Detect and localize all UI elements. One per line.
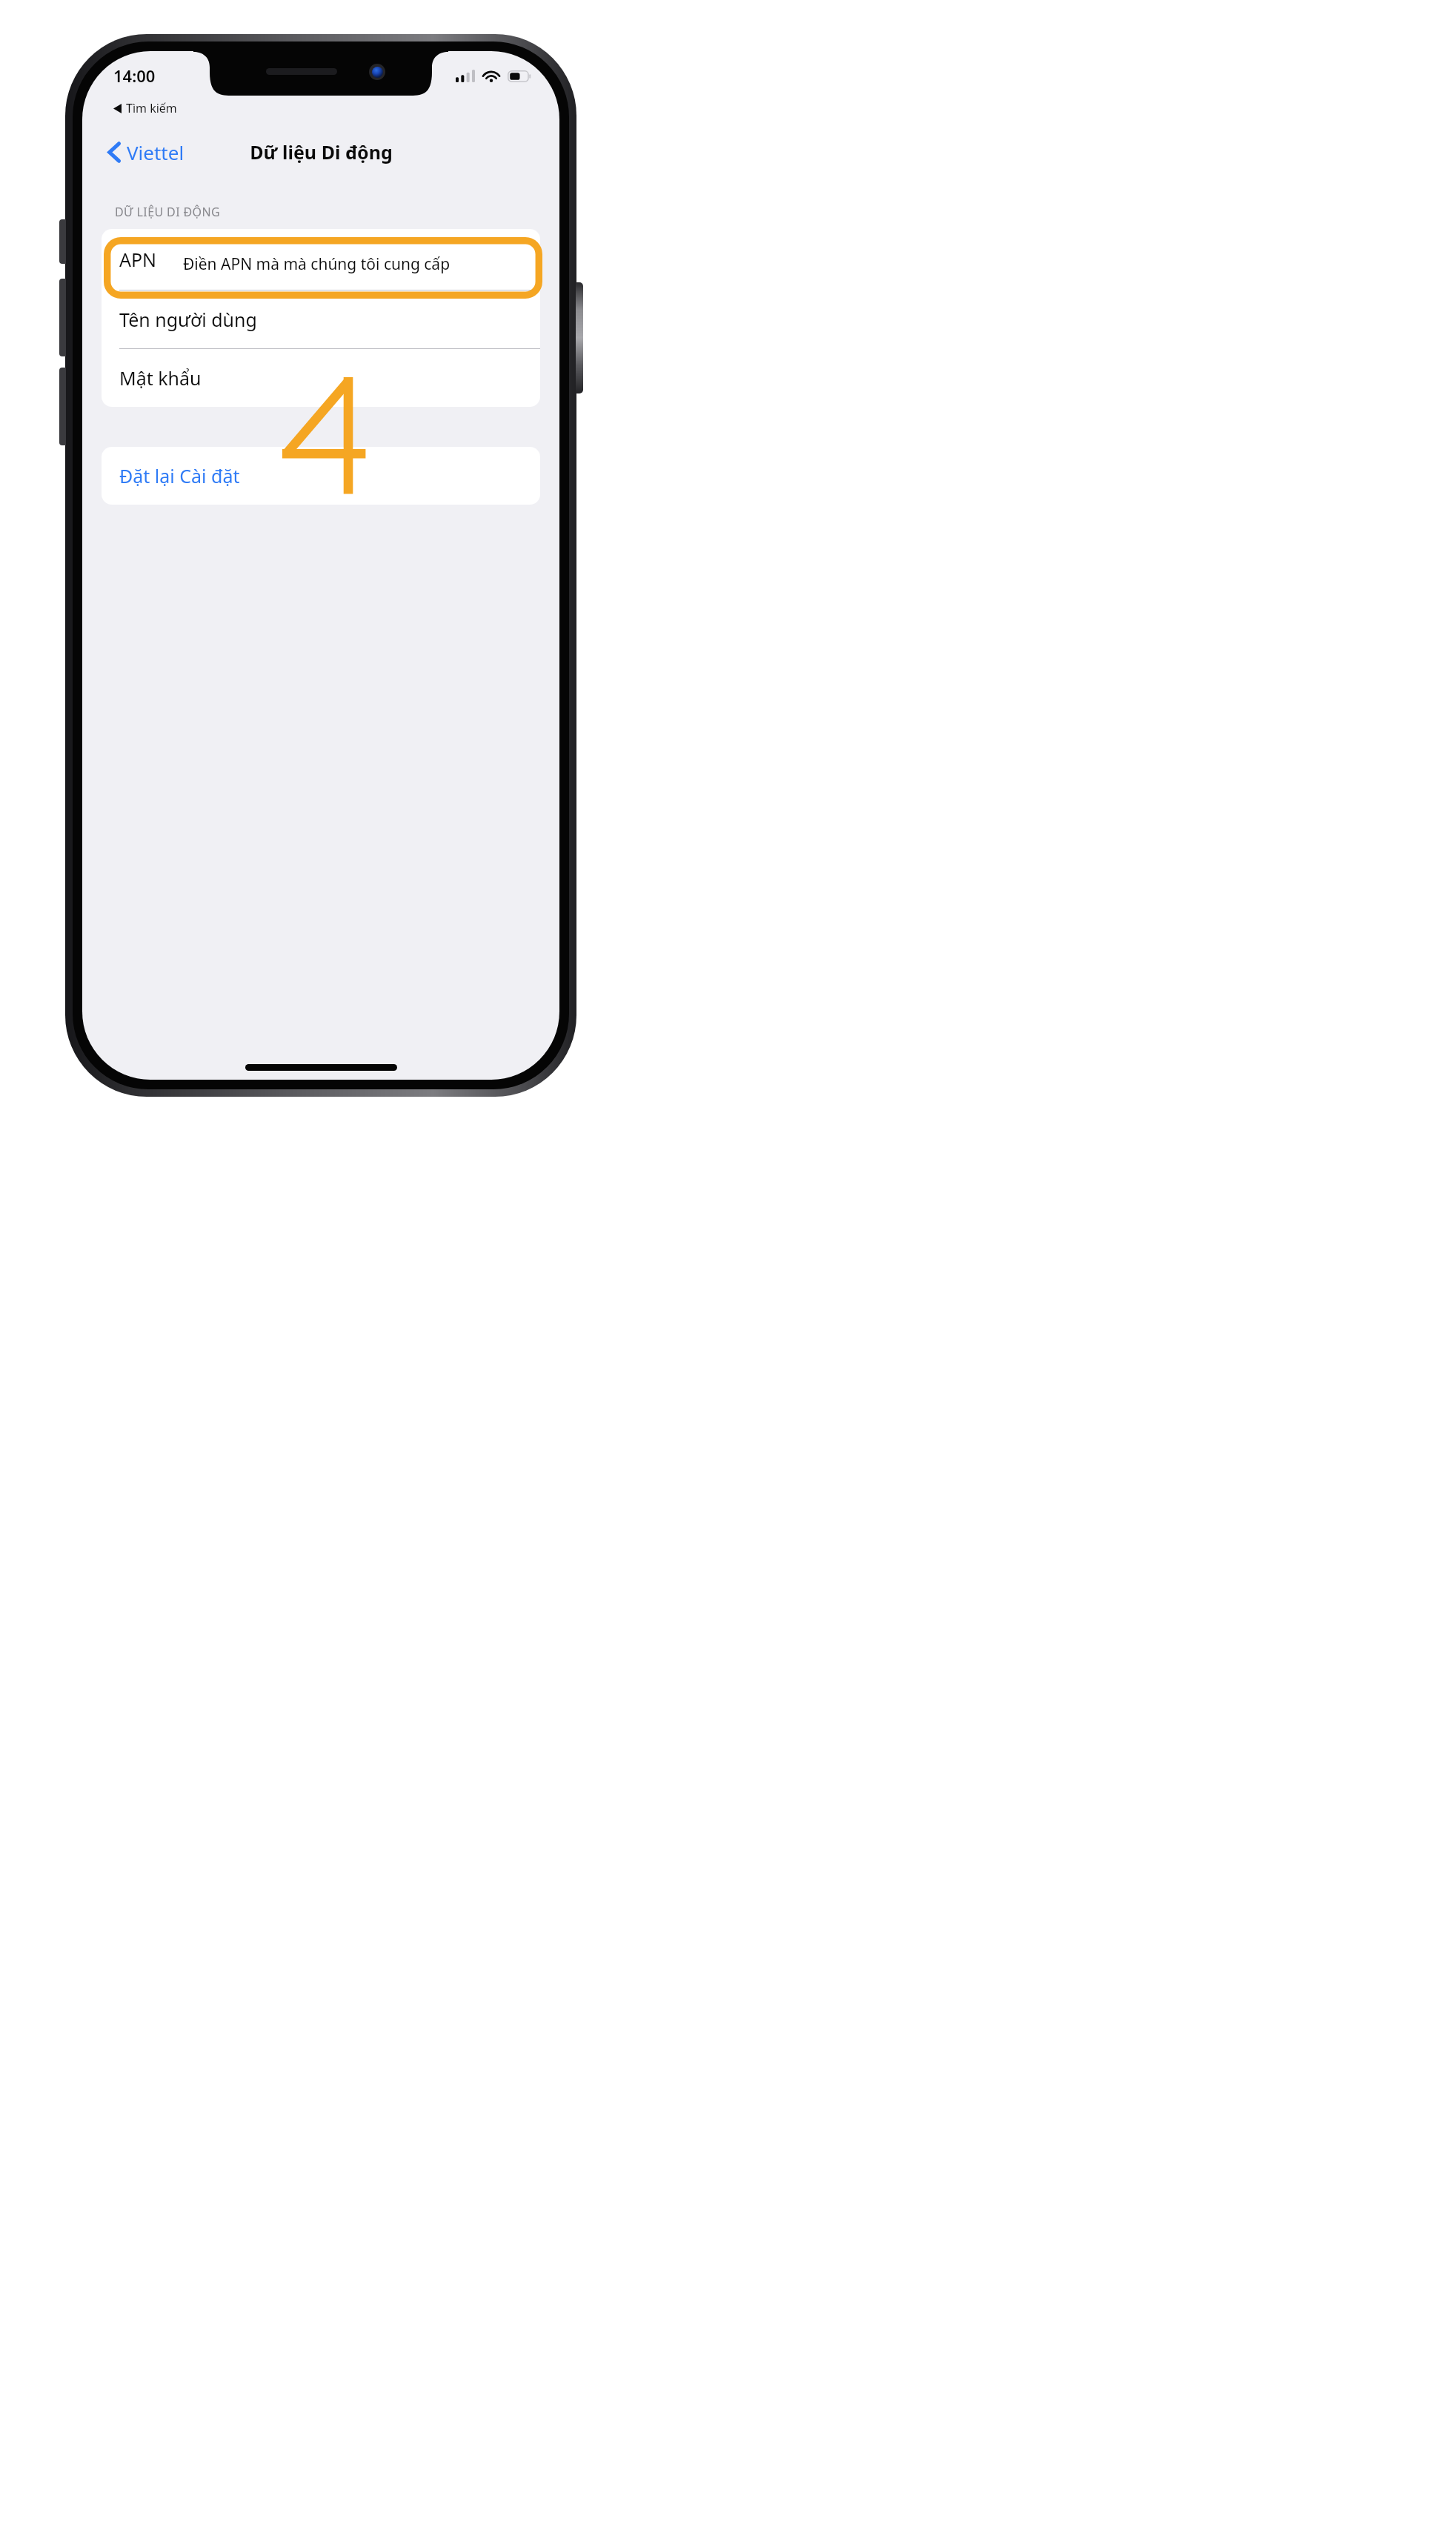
staticText: Tìm kiếm [126, 100, 177, 116]
staticText: Tên người dùng [119, 307, 257, 332]
staticText: APN [119, 247, 157, 272]
staticText: 14:00 [113, 64, 156, 87]
button[interactable]: Tên người dùng [102, 290, 540, 348]
staticText: Dữ liệu Di động [250, 139, 393, 165]
button[interactable]: APN [102, 229, 540, 290]
staticText: Viettel [127, 139, 185, 165]
staticText: Điền APN mà mà chúng tôi cung cấp [183, 253, 451, 275]
button[interactable]: Đặt lại Cài đặt [102, 447, 540, 505]
staticText: Mật khẩu [119, 365, 202, 391]
button[interactable]: Mật khẩu [102, 349, 540, 407]
staticText: Đặt lại Cài đặt [119, 463, 240, 488]
other: Step 4 [277, 377, 366, 496]
button[interactable]: Viettel [82, 135, 193, 170]
button[interactable]: Tìm kiếm [82, 97, 559, 119]
staticText: DỮ LIỆU DI ĐỘNG [115, 204, 221, 220]
